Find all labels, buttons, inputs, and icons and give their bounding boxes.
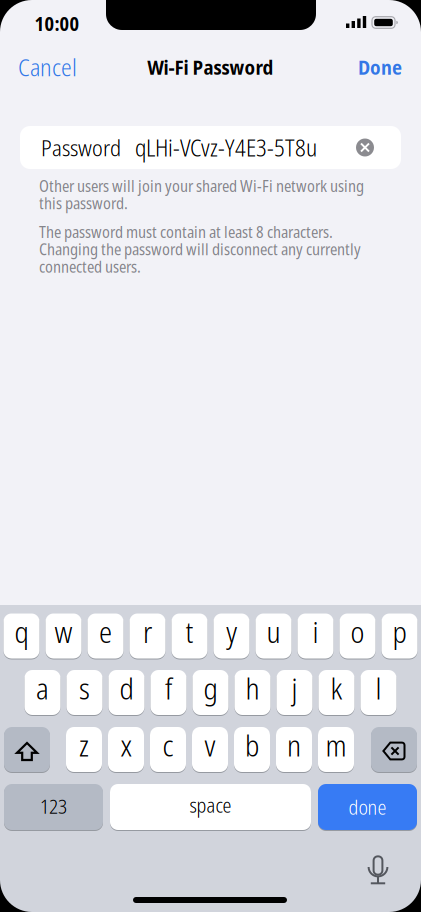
button[interactable]: e xyxy=(87,612,123,659)
button[interactable]: m xyxy=(318,726,354,773)
staticText: Other users will join your shared Wi-Fi … xyxy=(39,177,364,212)
staticText: q xyxy=(14,611,28,651)
button[interactable]: d xyxy=(108,669,144,716)
button[interactable]: Clear text xyxy=(356,138,374,156)
staticText: v xyxy=(204,725,215,765)
staticText: w xyxy=(54,611,72,651)
button[interactable]: y xyxy=(213,612,249,659)
button[interactable]: s xyxy=(66,669,102,716)
button[interactable]: v xyxy=(192,726,228,773)
button[interactable]: Password xyxy=(20,126,401,169)
staticText: k xyxy=(330,668,342,708)
staticText: l xyxy=(375,668,381,708)
button[interactable]: p xyxy=(381,612,417,659)
button[interactable]: j xyxy=(276,669,312,716)
button[interactable]: g xyxy=(192,669,228,716)
button[interactable]: c xyxy=(150,726,186,773)
staticText: j xyxy=(291,668,297,708)
button[interactable]: z xyxy=(66,726,102,773)
button[interactable]: u xyxy=(255,612,291,659)
button[interactable]: x xyxy=(108,726,144,773)
button[interactable]: f xyxy=(150,669,186,716)
staticText: h xyxy=(245,668,259,708)
button[interactable]: Done xyxy=(358,53,402,81)
button[interactable]: a xyxy=(24,669,60,716)
button[interactable]: Numbers xyxy=(4,783,103,831)
button[interactable]: Shift xyxy=(4,726,50,773)
button[interactable]: i xyxy=(297,612,333,659)
staticText: The password must contain at least 8 cha… xyxy=(39,223,361,275)
button[interactable]: n xyxy=(276,726,312,773)
staticText: p xyxy=(392,611,406,651)
button[interactable]: Delete xyxy=(371,726,417,773)
staticText: Cancel xyxy=(18,51,77,83)
button[interactable]: b xyxy=(234,726,270,773)
staticText: 123 xyxy=(40,792,67,820)
button[interactable]: q xyxy=(3,612,39,659)
staticText: i xyxy=(312,611,318,651)
staticText: o xyxy=(350,611,364,651)
staticText: space xyxy=(189,791,231,819)
staticText: f xyxy=(165,668,172,708)
staticText: s xyxy=(79,668,90,708)
button[interactable]: t xyxy=(171,612,207,659)
staticText: Wi-Fi Password xyxy=(147,53,273,81)
button[interactable]: Cancel xyxy=(18,51,77,83)
button[interactable]: done xyxy=(318,783,417,831)
button[interactable]: o xyxy=(339,612,375,659)
staticText: x xyxy=(120,725,131,765)
staticText: m xyxy=(325,725,346,765)
button[interactable]: space xyxy=(110,783,311,831)
staticText: n xyxy=(287,725,301,765)
staticText: r xyxy=(143,611,152,651)
staticText: u xyxy=(266,611,280,651)
staticText: done xyxy=(348,793,386,821)
button[interactable]: k xyxy=(318,669,354,716)
staticText: 10:00 xyxy=(34,10,79,37)
staticText: z xyxy=(79,725,89,765)
staticText: g xyxy=(203,668,217,708)
button[interactable]: h xyxy=(234,669,270,716)
staticText: Password xyxy=(41,132,121,163)
staticText: b xyxy=(245,725,259,765)
staticText: e xyxy=(99,611,112,651)
staticText: qLHi-VCvz-Y4E3-5T8u xyxy=(135,132,317,163)
button[interactable]: r xyxy=(129,612,165,659)
button[interactable]: w xyxy=(45,612,81,659)
staticText: t xyxy=(185,611,193,651)
staticText: d xyxy=(119,668,133,708)
staticText: a xyxy=(36,668,49,708)
button[interactable]: l xyxy=(360,669,396,716)
staticText: y xyxy=(226,611,237,651)
staticText: Done xyxy=(358,53,402,81)
staticText: c xyxy=(162,725,173,765)
button[interactable]: Dictation xyxy=(364,853,392,885)
